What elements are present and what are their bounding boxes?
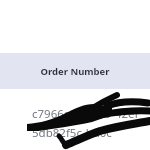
button[interactable]: Order Number (0, 53, 150, 89)
staticText: Order Number (40, 65, 110, 78)
staticText: c7966e2a-cc19-42ef (32, 106, 139, 122)
staticText: 5db82f5c-bd0c (32, 125, 112, 141)
